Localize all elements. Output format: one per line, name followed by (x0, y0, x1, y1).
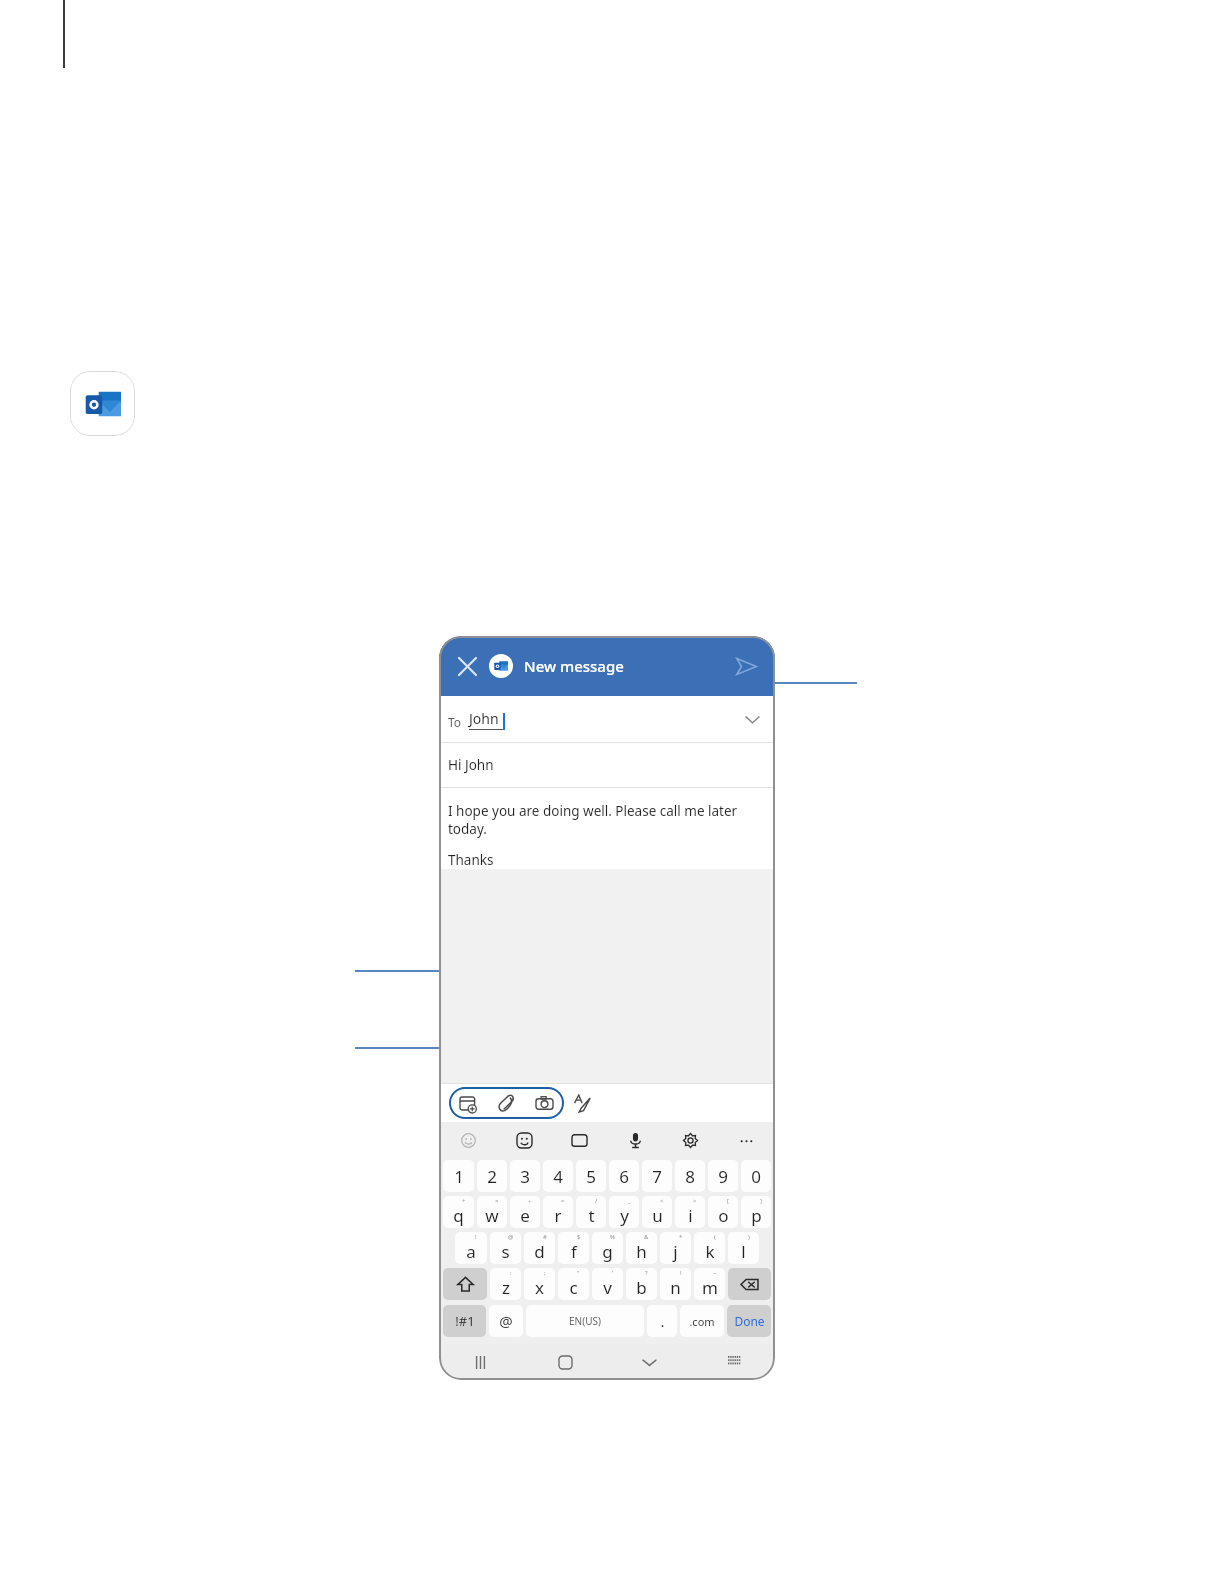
button[interactable]: 4 (543, 1160, 573, 1192)
staticText: k (705, 1240, 715, 1263)
staticText: 9 (718, 1165, 728, 1188)
button[interactable]: Voice input (620, 1125, 650, 1155)
button[interactable]: 8 (675, 1160, 705, 1192)
staticText: $ (577, 1233, 581, 1241)
staticText: × (495, 1197, 499, 1205)
staticText: 0 (751, 1165, 761, 1188)
button[interactable]: 9 (708, 1160, 738, 1192)
button[interactable]: EN(US) (526, 1305, 644, 1337)
button[interactable]: 0 (741, 1160, 771, 1192)
staticText: * (679, 1233, 683, 1241)
staticText: ( (714, 1233, 716, 1241)
button[interactable]: > (675, 1196, 705, 1228)
staticText: John (469, 709, 499, 728)
staticText: l (741, 1240, 746, 1263)
button[interactable]: 1 (443, 1160, 474, 1192)
button[interactable]: * (660, 1232, 691, 1264)
button[interactable]: Backspace (728, 1268, 771, 1300)
button[interactable]: ) (728, 1232, 759, 1264)
button[interactable]: Insert document (449, 1087, 487, 1119)
staticText: Done (734, 1313, 765, 1329)
staticText: 3 (520, 1165, 530, 1188)
staticText: + (462, 1197, 466, 1205)
button[interactable]: × (477, 1196, 507, 1228)
staticText: !#1 (455, 1312, 475, 1330)
button[interactable]: + (443, 1196, 474, 1228)
staticText: Hi John (448, 756, 494, 774)
button[interactable]: 6 (609, 1160, 639, 1192)
button[interactable]: ( (694, 1232, 725, 1264)
button[interactable]: 7 (642, 1160, 672, 1192)
button[interactable]: Emoji (453, 1125, 483, 1155)
button[interactable]: 5 (576, 1160, 606, 1192)
button[interactable]: Handwriting (563, 1087, 601, 1119)
button[interactable]: Attach file (487, 1087, 525, 1119)
button[interactable]: = (543, 1196, 573, 1228)
button[interactable]: 3 (510, 1160, 540, 1192)
button[interactable]: @ (490, 1232, 521, 1264)
staticText: q (453, 1204, 464, 1227)
button[interactable]: % (592, 1232, 623, 1264)
staticText: % (610, 1233, 615, 1241)
button[interactable]: [ (708, 1196, 738, 1228)
button[interactable]: 2 (477, 1160, 507, 1192)
button[interactable]: Stickers (509, 1125, 539, 1155)
button[interactable]: . (647, 1305, 677, 1337)
button[interactable]: " (558, 1268, 589, 1300)
button[interactable]: ' (592, 1268, 623, 1300)
staticText: y (620, 1204, 629, 1227)
button[interactable]: @ (489, 1305, 523, 1337)
button[interactable]: .com (680, 1305, 724, 1337)
staticText: ~ (713, 1269, 717, 1277)
button[interactable]: Back (632, 1345, 666, 1379)
button[interactable]: Recents (463, 1345, 497, 1379)
staticText: _ (628, 1197, 631, 1205)
button[interactable]: Close (449, 648, 485, 684)
button[interactable]: More options (731, 1125, 761, 1155)
staticText: g (602, 1240, 613, 1263)
staticText: c (569, 1276, 578, 1299)
button[interactable]: Expand recipients (737, 704, 767, 734)
staticText: ' (612, 1269, 614, 1277)
staticText: w (485, 1204, 499, 1227)
staticText: Thanks (448, 851, 494, 869)
staticText: a (466, 1240, 476, 1263)
button[interactable]: < (642, 1196, 672, 1228)
button[interactable]: & (626, 1232, 657, 1264)
button[interactable]: Done (727, 1305, 771, 1337)
staticText: p (751, 1204, 762, 1227)
button[interactable]: : (490, 1268, 521, 1300)
staticText: @ (499, 1311, 513, 1331)
button[interactable]: _ (609, 1196, 639, 1228)
staticText: ÷ (528, 1197, 532, 1205)
button[interactable]: ? (626, 1268, 657, 1300)
button[interactable]: ÷ (510, 1196, 540, 1228)
button[interactable]: ] (741, 1196, 771, 1228)
staticText: " (577, 1269, 580, 1277)
button[interactable]: !#1 (443, 1305, 486, 1337)
button[interactable]: Home (548, 1345, 582, 1379)
staticText: 8 (685, 1165, 695, 1188)
staticText: To (448, 714, 462, 730)
button[interactable]: ! (455, 1232, 487, 1264)
button[interactable]: ; (524, 1268, 555, 1300)
button[interactable]: $ (558, 1232, 589, 1264)
button[interactable]: Keyboard settings (675, 1125, 705, 1155)
button[interactable]: / (576, 1196, 606, 1228)
button[interactable]: Hide keyboard (717, 1345, 751, 1379)
button[interactable]: ~ (694, 1268, 725, 1300)
button[interactable]: ! (660, 1268, 691, 1300)
button[interactable]: Shift (443, 1268, 487, 1300)
staticText: : (510, 1269, 512, 1277)
button[interactable]: Send (727, 647, 765, 685)
button[interactable]: Camera (525, 1087, 563, 1119)
staticText: I hope you are doing well. Please call m… (448, 802, 738, 838)
staticText: @ (508, 1233, 514, 1241)
staticText: New message (524, 656, 624, 676)
staticText: s (501, 1240, 510, 1263)
staticText: > (693, 1197, 697, 1205)
button[interactable]: Outlook (70, 371, 135, 436)
staticText: h (636, 1240, 647, 1263)
button[interactable]: # (524, 1232, 555, 1264)
button[interactable]: GIF (564, 1125, 594, 1155)
